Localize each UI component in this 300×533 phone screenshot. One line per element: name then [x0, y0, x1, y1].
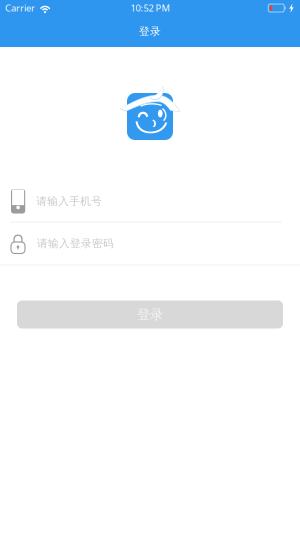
staticText: 请输入手机号 [36, 195, 102, 208]
button[interactable]: 登录 [17, 300, 283, 328]
staticText: 请输入登录密码 [37, 237, 114, 250]
staticText: 登录 [139, 25, 161, 38]
staticText: 登录 [137, 306, 163, 323]
staticText: 10:52 PM [130, 2, 169, 14]
staticText: Carrier [5, 2, 35, 14]
